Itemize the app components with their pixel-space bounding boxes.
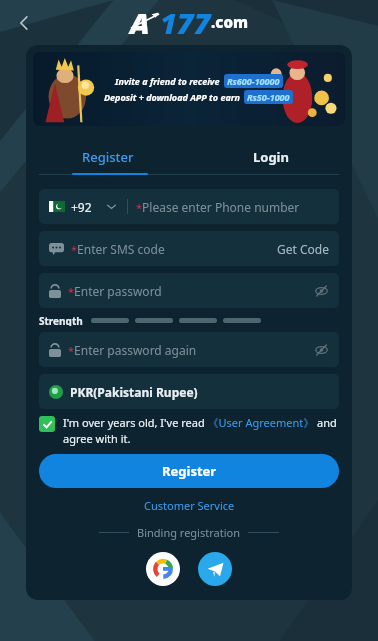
button[interactable]: *Enter SMS code bbox=[39, 231, 339, 266]
staticText: Register bbox=[162, 462, 217, 480]
staticText: Deposit + download APP to earn bbox=[104, 91, 240, 103]
staticText: *Enter password bbox=[68, 283, 162, 299]
staticText: Login bbox=[253, 148, 289, 166]
staticText: Strength bbox=[39, 314, 83, 326]
button[interactable]: Register bbox=[26, 141, 189, 173]
button[interactable]: *Enter password again bbox=[39, 332, 339, 367]
staticText: PKR(Pakistani Rupee) bbox=[70, 384, 198, 400]
staticText: Binding registration bbox=[137, 525, 240, 540]
staticText: *Please enter Phone number bbox=[136, 199, 300, 215]
staticText: I'm over years old, I've read 《User Agre… bbox=[63, 415, 339, 446]
button[interactable]: Back bbox=[8, 7, 40, 39]
staticText: Register bbox=[82, 148, 134, 166]
staticText: Invite a friend to receive bbox=[115, 75, 220, 87]
button[interactable]: Register bbox=[39, 454, 339, 488]
staticText: Rs50-1000 bbox=[247, 91, 290, 103]
staticText: 177 bbox=[160, 3, 211, 42]
button[interactable]: Customer Service bbox=[144, 498, 235, 513]
staticText: +92 bbox=[71, 199, 92, 215]
button[interactable]: PKR(Pakistani Rupee) bbox=[39, 374, 339, 409]
staticText: .com bbox=[211, 12, 248, 32]
button[interactable]: Login bbox=[189, 141, 352, 173]
button[interactable]: +92 bbox=[39, 189, 339, 224]
staticText: *Enter SMS code bbox=[71, 241, 165, 257]
button[interactable]: Sign in with Google bbox=[146, 552, 180, 586]
button[interactable]: *Enter password bbox=[39, 273, 339, 308]
staticText: *Enter password again bbox=[68, 342, 197, 358]
staticText: A bbox=[130, 3, 150, 42]
staticText: Rs600-10000 bbox=[227, 75, 280, 87]
button[interactable]: Get Code bbox=[277, 241, 329, 257]
button[interactable]: I'm over years old, I've read 《User Agre… bbox=[39, 415, 339, 446]
button[interactable]: Sign in with Telegram bbox=[198, 552, 232, 586]
